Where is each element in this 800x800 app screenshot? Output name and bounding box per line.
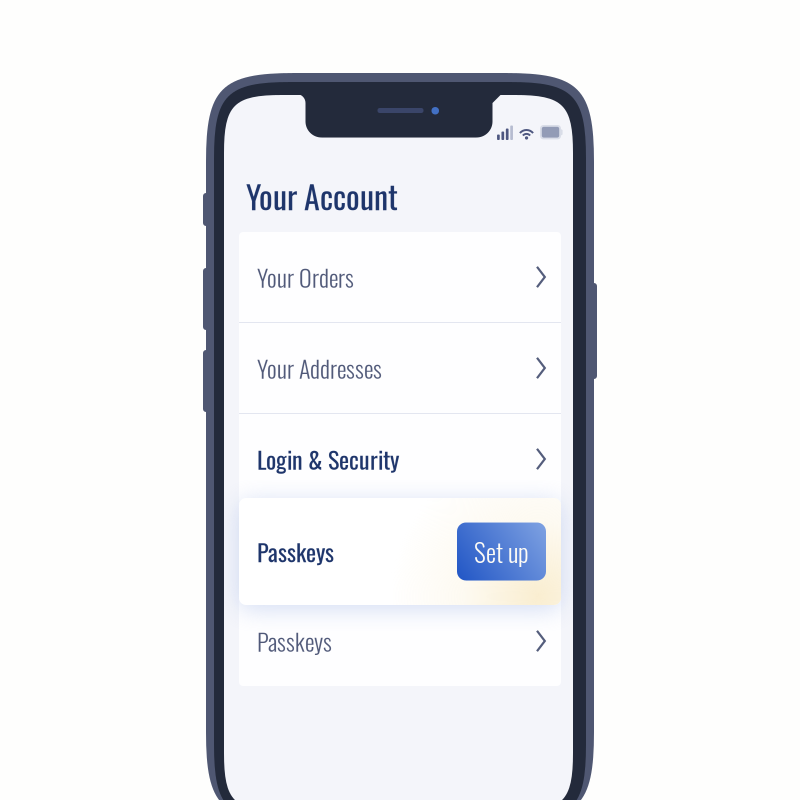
staticText: Passkeys: [257, 623, 332, 659]
staticText: Passkeys: [257, 532, 332, 568]
staticText: Your Account: [246, 172, 398, 219]
button[interactable]: Login & Security: [239, 414, 561, 504]
staticText: Your Addresses: [257, 350, 382, 386]
button[interactable]: Passkeys: [239, 505, 561, 595]
staticText: Passkeys: [257, 534, 334, 569]
button[interactable]: Your Addresses: [239, 323, 561, 413]
staticText: Your Orders: [257, 259, 354, 295]
staticText: Set up: [474, 533, 529, 570]
button[interactable]: Your Orders: [239, 232, 561, 322]
button[interactable]: Passkeys: [239, 498, 561, 605]
staticText: Login & Security: [257, 441, 399, 477]
button[interactable]: Passkeys: [239, 596, 561, 686]
